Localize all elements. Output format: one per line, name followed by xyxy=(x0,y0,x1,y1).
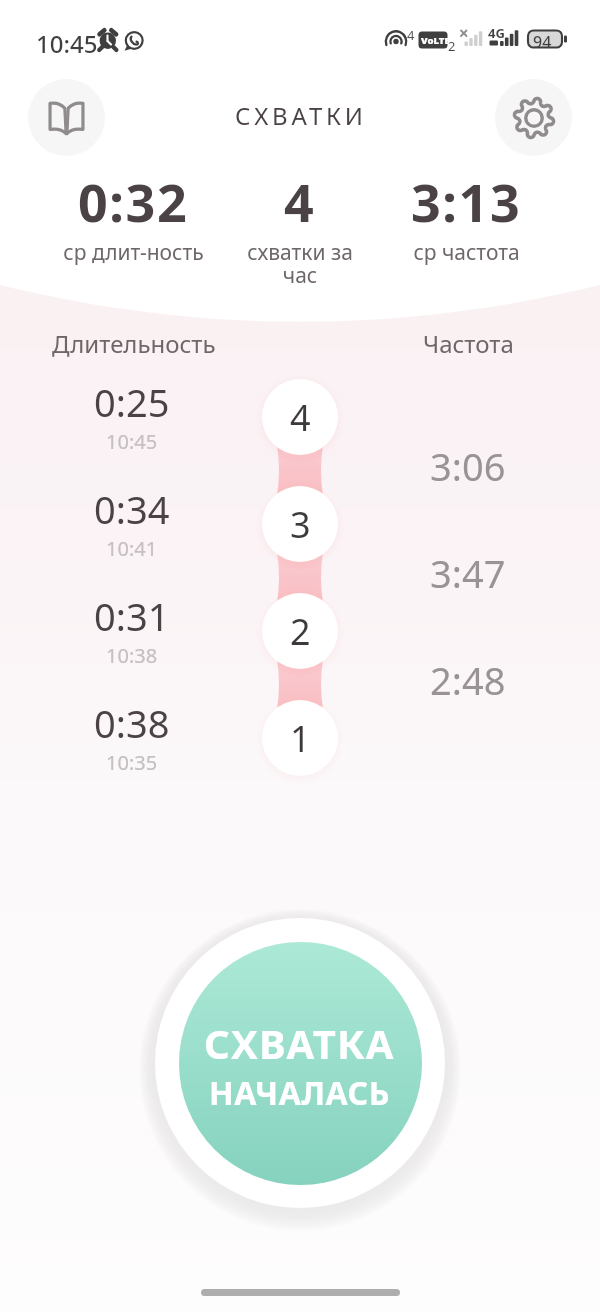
button[interactable]: 4 xyxy=(262,379,338,455)
staticText: СХВАТКА xyxy=(204,1016,395,1070)
staticText: 2 xyxy=(448,37,456,55)
staticText: 3:13 xyxy=(411,166,522,237)
staticText: 4G xyxy=(488,24,505,42)
staticText: 3:06 xyxy=(430,440,506,492)
staticText: 10:41 xyxy=(106,535,158,562)
button[interactable]: 3 xyxy=(262,486,338,562)
staticText: 10:45 xyxy=(106,428,158,455)
staticText: 0:31 xyxy=(94,590,170,642)
staticText: 2 xyxy=(290,607,311,656)
staticText: 10:45 xyxy=(36,27,98,60)
staticText: 0:34 xyxy=(94,483,170,535)
staticText: 3:47 xyxy=(430,547,506,599)
staticText: схватки за час xyxy=(247,238,353,289)
staticText: 4 xyxy=(284,166,316,237)
staticText: ср длит-ность xyxy=(63,238,204,267)
staticText: 0:32 xyxy=(78,166,189,237)
staticText: 1 xyxy=(290,714,311,763)
staticText: ср частота xyxy=(413,238,520,267)
staticText: 10:35 xyxy=(106,749,158,776)
staticText: VoLTE xyxy=(421,34,450,47)
button[interactable]: 1 xyxy=(262,700,338,776)
button[interactable]: Settings xyxy=(495,79,572,156)
button[interactable]: Guide xyxy=(28,79,105,156)
staticText: 3 xyxy=(290,500,311,549)
button[interactable]: СХВАТКА xyxy=(155,918,445,1208)
staticText: 0:25 xyxy=(94,376,170,428)
staticText: 0:38 xyxy=(94,697,170,749)
staticText: 2:48 xyxy=(430,654,506,706)
staticText: 4 xyxy=(407,26,415,44)
staticText: НАЧАЛАСЬ xyxy=(209,1071,391,1115)
staticText: 4 xyxy=(290,393,311,442)
staticText: 94 xyxy=(533,31,552,53)
staticText: СХВАТКИ xyxy=(235,99,367,132)
staticText: 10:38 xyxy=(106,642,158,669)
staticText: Длительность xyxy=(52,327,216,360)
staticText: Частота xyxy=(423,327,514,360)
button[interactable]: 2 xyxy=(262,593,338,669)
